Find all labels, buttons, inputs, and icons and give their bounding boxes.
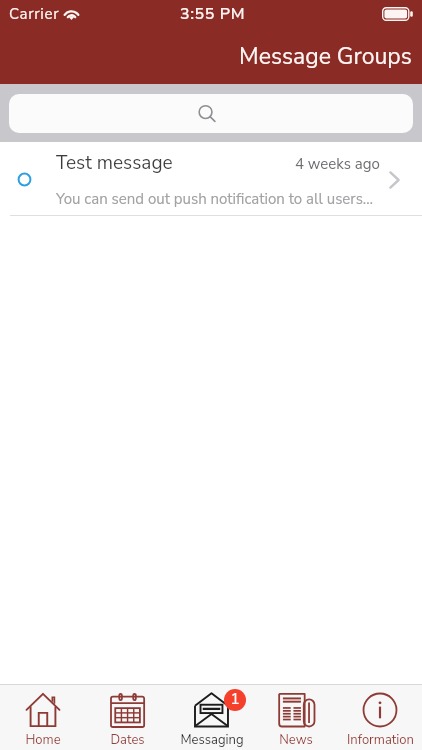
button[interactable]: 1 <box>170 685 254 750</box>
staticText: Message Groups <box>239 41 412 72</box>
staticText: Home <box>25 731 61 749</box>
staticText: Messaging <box>180 731 244 749</box>
staticText: You can send out push notification to al… <box>56 189 374 209</box>
staticText: Test message <box>56 150 173 176</box>
staticText: 3:55 PM <box>180 3 246 25</box>
button[interactable]: Home <box>0 685 85 750</box>
button[interactable]: Dates <box>85 685 170 750</box>
staticText: 1 <box>230 689 240 710</box>
button[interactable]: News <box>254 685 338 750</box>
staticText: Dates <box>110 731 145 749</box>
staticText: Carrier <box>9 4 60 24</box>
staticText: 4 weeks ago <box>295 154 380 174</box>
button[interactable]: Test message <box>0 142 422 216</box>
button[interactable]: Information <box>338 685 422 750</box>
button[interactable]: Search <box>9 94 413 133</box>
staticText: News <box>279 731 313 749</box>
staticText: Information <box>347 731 414 749</box>
